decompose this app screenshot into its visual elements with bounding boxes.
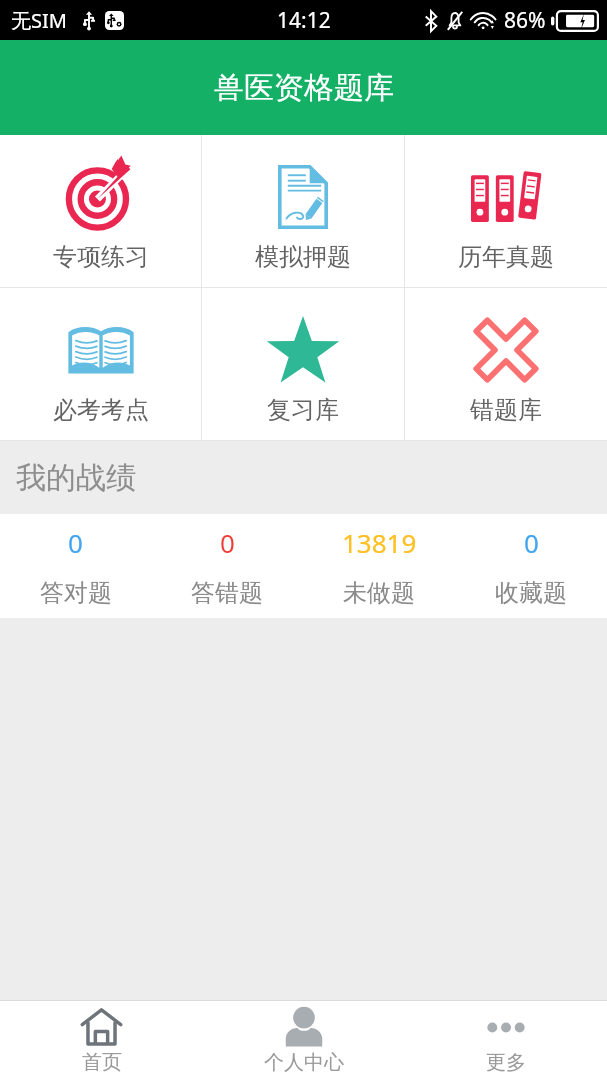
staticText: 未做题 bbox=[343, 578, 415, 608]
staticText: 0 bbox=[220, 525, 235, 560]
staticText: 专项练习 bbox=[53, 242, 149, 272]
staticText: 兽医资格题库 bbox=[214, 69, 394, 107]
staticText: 答错题 bbox=[191, 578, 263, 608]
staticText: 13819 bbox=[342, 525, 417, 560]
button[interactable]: 个人中心 bbox=[203, 1001, 405, 1080]
staticText: 答对题 bbox=[40, 578, 112, 608]
button[interactable]: 未做题 13819 bbox=[303, 514, 455, 618]
button[interactable]: 更多 bbox=[405, 1001, 607, 1080]
staticText: 必考考点 bbox=[53, 395, 149, 425]
button[interactable]: 收藏题 0 bbox=[455, 514, 607, 618]
button[interactable]: 答对题 0 bbox=[0, 514, 151, 618]
button[interactable]: 首页 bbox=[0, 1001, 203, 1080]
button[interactable]: 历年真题 bbox=[405, 135, 607, 287]
staticText: 更多 bbox=[486, 1050, 526, 1075]
button[interactable]: 专项练习 bbox=[0, 135, 201, 287]
button[interactable]: 模拟押题 bbox=[202, 135, 404, 287]
staticText: 历年真题 bbox=[458, 242, 554, 272]
staticText: 个人中心 bbox=[264, 1050, 344, 1075]
staticText: 收藏题 bbox=[495, 578, 567, 608]
button[interactable]: 必考考点 bbox=[0, 288, 201, 440]
staticText: 复习库 bbox=[267, 395, 339, 425]
staticText: 0 bbox=[68, 525, 83, 560]
button[interactable]: 错题库 bbox=[405, 288, 607, 440]
staticText: 14:12 bbox=[277, 6, 331, 35]
staticText: 无SIM bbox=[11, 7, 67, 34]
staticText: 我的战绩 bbox=[16, 459, 136, 497]
staticText: 错题库 bbox=[470, 395, 542, 425]
button[interactable]: 答错题 0 bbox=[151, 514, 303, 618]
staticText: 0 bbox=[524, 525, 539, 560]
staticText: 首页 bbox=[82, 1050, 122, 1075]
staticText: 86% bbox=[504, 6, 546, 35]
staticText: 模拟押题 bbox=[255, 242, 351, 272]
button[interactable]: 复习库 bbox=[202, 288, 404, 440]
